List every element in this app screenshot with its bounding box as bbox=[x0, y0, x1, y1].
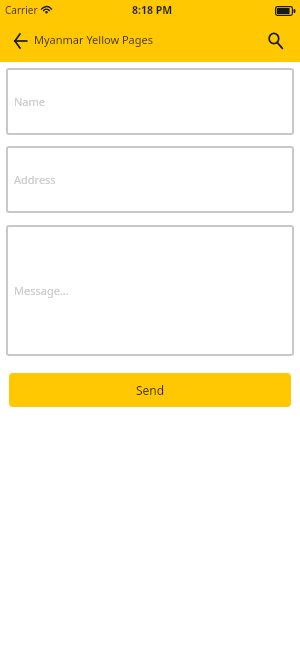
button[interactable]: Name bbox=[6, 68, 294, 135]
staticText: Message... bbox=[14, 283, 69, 298]
button[interactable]: Search bbox=[260, 22, 300, 62]
staticText: Myanmar Yellow Pages bbox=[34, 32, 153, 47]
staticText: Carrier bbox=[5, 3, 38, 17]
button[interactable]: Address bbox=[6, 146, 294, 213]
staticText: Address bbox=[14, 172, 56, 187]
staticText: Name bbox=[14, 94, 46, 109]
staticText: 8:18 PM bbox=[132, 3, 173, 17]
button[interactable]: Message... bbox=[6, 225, 294, 356]
button[interactable]: Send bbox=[9, 373, 291, 407]
staticText: Send bbox=[136, 382, 165, 398]
button[interactable]: Back bbox=[0, 22, 40, 62]
